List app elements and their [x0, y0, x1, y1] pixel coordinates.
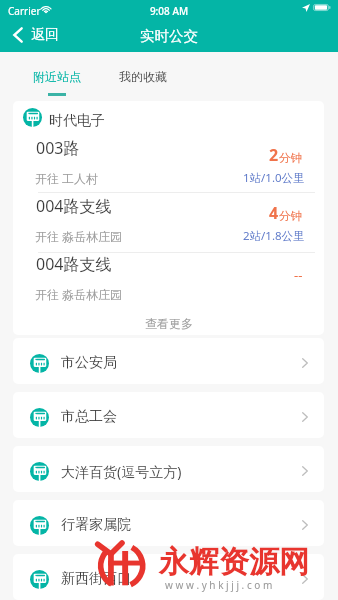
button[interactable]: 003路: [13, 135, 324, 193]
button[interactable]: 市公安局: [13, 338, 324, 384]
staticText: 行署家属院: [61, 516, 131, 534]
staticText: 市公安局: [61, 354, 117, 372]
staticText: 1站/1.0公里: [243, 170, 305, 186]
button[interactable]: 行署家属院: [13, 500, 324, 546]
staticText: 市总工会: [61, 408, 117, 426]
staticText: Carrier: [8, 4, 41, 18]
button[interactable]: 新西街西口: [13, 554, 324, 600]
staticText: 附近站点: [33, 69, 81, 84]
staticText: 9:08 AM: [0, 4, 338, 18]
button[interactable]: 004路支线: [13, 251, 324, 309]
staticText: w w w . y h k j j j . c o m: [165, 578, 273, 592]
staticText: 分钟: [279, 151, 302, 165]
button[interactable]: 市总工会: [13, 392, 324, 438]
staticText: 实时公交: [140, 27, 198, 45]
button[interactable]: 大洋百货(逗号立方): [13, 446, 324, 492]
button[interactable]: 附近站点: [25, 52, 89, 101]
staticText: 新西街西口: [61, 570, 131, 588]
staticText: 2: [269, 144, 279, 166]
staticText: 返回: [31, 26, 59, 44]
staticText: 永辉资源网: [159, 543, 309, 581]
button[interactable]: 查看更多: [13, 311, 324, 335]
button[interactable]: 我的收藏: [111, 52, 175, 101]
staticText: --: [294, 266, 303, 284]
staticText: 003路: [36, 137, 80, 159]
button[interactable]: 004路支线: [13, 193, 324, 251]
staticText: 开往 淼岳林庄园: [35, 286, 123, 302]
other: 位置: [302, 4, 310, 12]
staticText: 004路支线: [36, 253, 112, 275]
staticText: 时代电子: [49, 112, 105, 130]
staticText: 分钟: [279, 209, 302, 223]
staticText: 开往 淼岳林庄园: [35, 228, 123, 244]
staticText: 开往 工人村: [35, 170, 99, 186]
staticText: 大洋百货(逗号立方): [61, 462, 182, 481]
staticText: 查看更多: [145, 316, 193, 331]
staticText: 4: [269, 202, 279, 224]
staticText: 004路支线: [36, 195, 112, 217]
button[interactable]: 返回: [8, 23, 67, 47]
staticText: 我的收藏: [119, 69, 167, 84]
staticText: 2站/1.8公里: [243, 228, 305, 244]
